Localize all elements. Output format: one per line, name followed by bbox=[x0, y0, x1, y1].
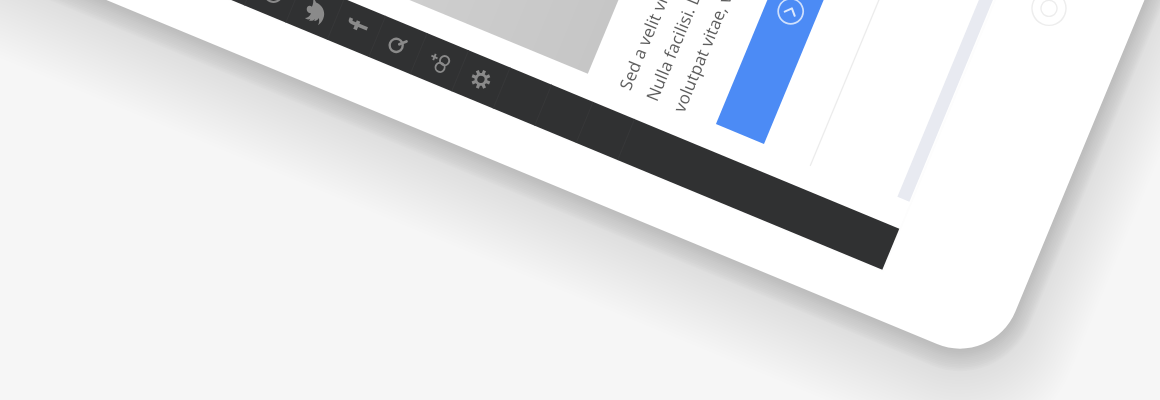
staticText: Nulla facilisi. Duis sed bbox=[640, 0, 728, 104]
staticText: Sed a velit vitae nulla bbox=[614, 0, 699, 93]
staticText: volutpat vitae, vestibulum bbox=[667, 0, 768, 115]
